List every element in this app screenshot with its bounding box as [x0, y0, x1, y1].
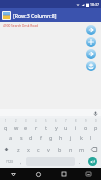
button[interactable]: ,	[17, 157, 25, 166]
button[interactable]: m	[76, 143, 87, 155]
button[interactable]: 2	[11, 118, 21, 131]
button[interactable]: l	[86, 131, 96, 143]
staticText: [Row:3 Column:8]	[13, 12, 57, 19]
staticText: c	[37, 146, 40, 153]
staticText: 7	[65, 119, 67, 123]
staticText: .	[79, 159, 81, 165]
staticText: 8	[75, 119, 77, 123]
button[interactable]: ?123	[1, 157, 17, 166]
staticText: u	[64, 124, 68, 131]
staticText: 1	[5, 119, 7, 123]
staticText: ,	[20, 159, 22, 165]
button[interactable]: f	[36, 131, 46, 143]
button[interactable]: App icon	[2, 11, 11, 20]
staticText: ?123	[6, 160, 13, 164]
staticText: j	[70, 134, 72, 141]
staticText: z	[17, 146, 20, 153]
button[interactable]: b	[54, 143, 65, 155]
staticText: e	[24, 124, 28, 131]
staticText: a	[9, 134, 13, 141]
button[interactable]: x	[23, 143, 33, 155]
staticText: 6	[55, 119, 57, 123]
button[interactable]: 5	[41, 118, 51, 131]
button[interactable]: .	[76, 157, 84, 166]
button[interactable]: d	[26, 131, 36, 143]
staticText: q	[4, 124, 8, 131]
staticText: t	[45, 124, 47, 131]
button[interactable]: n	[65, 143, 76, 155]
staticText: 2	[15, 119, 17, 123]
button[interactable]: 9	[81, 118, 91, 131]
staticText: b	[58, 146, 62, 153]
button[interactable]: Shift	[0, 143, 13, 155]
button[interactable]: Next	[86, 25, 96, 35]
button[interactable]: 0	[91, 118, 101, 131]
staticText: d	[29, 134, 33, 141]
button[interactable]: v	[43, 143, 54, 155]
staticText: l	[90, 134, 92, 141]
staticText: 9	[85, 119, 87, 123]
button[interactable]: c	[33, 143, 43, 155]
button[interactable]: 4	[31, 118, 41, 131]
button[interactable]: 6	[51, 118, 61, 131]
staticText: r	[35, 124, 38, 131]
staticText: 4900 Search Desk Road	[3, 24, 38, 28]
button[interactable]: 1	[0, 118, 11, 131]
staticText: i	[75, 124, 77, 131]
button[interactable]: Switch keyboard	[76, 168, 101, 180]
staticText: f	[40, 134, 42, 141]
button[interactable]: Pan	[86, 37, 96, 47]
button[interactable]: 8	[71, 118, 81, 131]
staticText: h	[59, 134, 63, 141]
button[interactable]: Home	[26, 168, 51, 180]
staticText: y	[55, 124, 58, 131]
staticText: m	[79, 146, 85, 153]
staticText: 5	[45, 119, 47, 123]
button[interactable]: Anchor	[86, 61, 96, 71]
button[interactable]: Recents	[51, 168, 76, 180]
staticText: 3	[25, 119, 27, 123]
staticText: x	[27, 146, 30, 153]
staticText: k	[80, 134, 83, 141]
button[interactable]: Back	[0, 168, 26, 180]
button[interactable]: a	[5, 131, 16, 143]
button[interactable]: z	[13, 143, 23, 155]
staticText: 4	[35, 119, 37, 123]
button[interactable]: 3	[21, 118, 31, 131]
button[interactable]: Backspace	[87, 143, 101, 155]
button[interactable]: 7	[61, 118, 71, 131]
staticText: 0	[95, 119, 97, 123]
button[interactable]: h	[56, 131, 66, 143]
staticText: n	[69, 146, 73, 153]
button[interactable]: j	[66, 131, 76, 143]
staticText: 18:37	[90, 2, 99, 7]
button[interactable]: Forward	[86, 49, 96, 59]
staticText: v	[47, 146, 50, 153]
button[interactable]: s	[16, 131, 26, 143]
staticText: w	[14, 124, 19, 131]
button[interactable]: g	[46, 131, 56, 143]
staticText: p	[94, 124, 98, 131]
button[interactable]: Enter	[84, 157, 100, 166]
staticText: g	[49, 134, 53, 141]
button[interactable]: k	[76, 131, 86, 143]
staticText: s	[20, 134, 23, 141]
staticText: o	[84, 124, 88, 131]
